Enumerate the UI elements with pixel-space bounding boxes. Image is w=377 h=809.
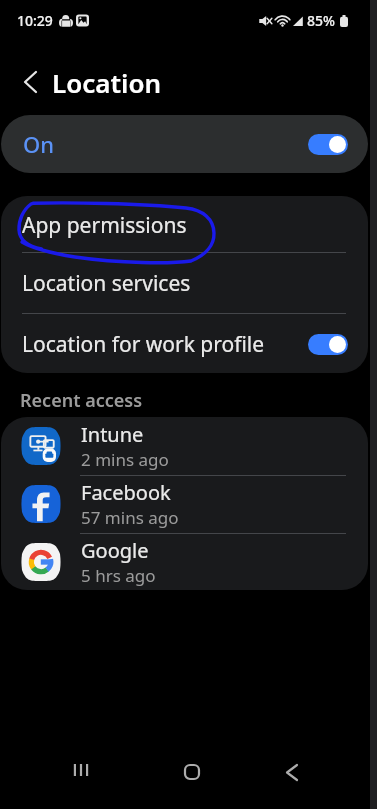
button[interactable]: Toggle (308, 134, 348, 155)
staticText: Location services (22, 269, 191, 298)
button[interactable]: Back (265, 745, 319, 799)
button[interactable]: Back (12, 64, 48, 100)
staticText: Google (81, 537, 149, 564)
button[interactable]: On (1, 115, 368, 173)
staticText: App permissions (22, 211, 187, 240)
staticText: Intune (81, 421, 144, 448)
staticText: 57 mins ago (81, 506, 179, 529)
staticText: Recent access (20, 388, 143, 413)
button[interactable]: Intune (1, 417, 368, 475)
staticText: On (23, 129, 55, 159)
button[interactable]: Google (1, 533, 368, 590)
staticText: Facebook (81, 479, 171, 506)
staticText: Location for work profile (22, 330, 265, 359)
staticText: 5 hrs ago (81, 564, 156, 587)
button[interactable]: Home (165, 745, 219, 799)
staticText: 2 mins ago (81, 448, 169, 471)
staticText: Location (52, 65, 162, 100)
button[interactable]: Toggle (308, 334, 348, 355)
button[interactable]: Recents (54, 743, 108, 797)
staticText: 10:29 (17, 11, 53, 30)
button[interactable]: Location services (1, 254, 368, 312)
button[interactable]: Facebook (1, 475, 368, 533)
button[interactable]: App permissions (1, 196, 368, 254)
button[interactable]: Location for work profile (1, 315, 368, 373)
staticText: 85% (307, 11, 335, 30)
